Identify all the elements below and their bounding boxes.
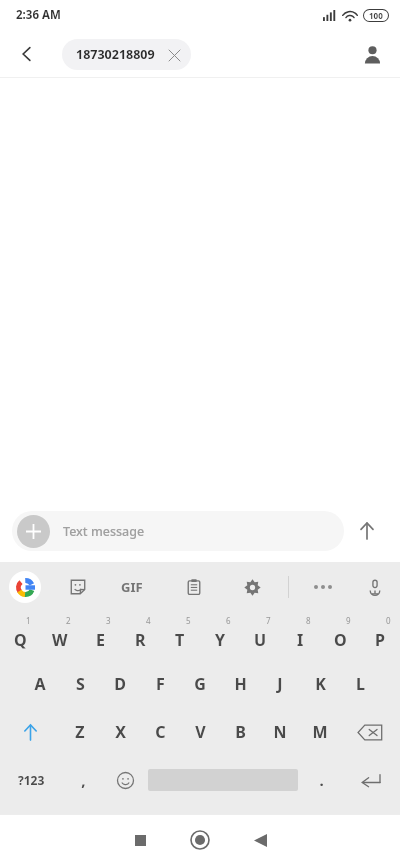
- button[interactable]: D: [100, 660, 140, 708]
- staticText: Z: [75, 721, 85, 743]
- button[interactable]: Shift: [0, 708, 60, 756]
- staticText: 3: [106, 615, 111, 626]
- staticText: ?123: [18, 772, 45, 788]
- button[interactable]: R: [120, 612, 160, 660]
- button[interactable]: Y: [200, 612, 240, 660]
- staticText: Q: [14, 629, 27, 651]
- staticText: 0: [386, 615, 391, 626]
- staticText: G: [194, 673, 206, 695]
- button[interactable]: Google: [9, 571, 41, 603]
- staticText: M: [312, 721, 328, 743]
- staticText: 6: [226, 615, 231, 626]
- button[interactable]: W: [40, 612, 80, 660]
- button[interactable]: Clipboard: [178, 571, 210, 603]
- button[interactable]: O: [320, 612, 360, 660]
- button[interactable]: C: [140, 708, 180, 756]
- button[interactable]: ,: [62, 756, 104, 804]
- staticText: F: [156, 673, 165, 695]
- button[interactable]: F: [140, 660, 180, 708]
- button[interactable]: Back: [10, 37, 44, 71]
- button[interactable]: M: [300, 708, 340, 756]
- staticText: J: [277, 673, 283, 695]
- staticText: B: [235, 721, 246, 743]
- button[interactable]: Home: [170, 814, 230, 866]
- button[interactable]: Add attachment: [17, 515, 50, 548]
- button[interactable]: Recent apps: [110, 814, 170, 866]
- staticText: P: [375, 629, 385, 651]
- staticText: 100: [369, 10, 383, 21]
- button[interactable]: L: [340, 660, 380, 708]
- button[interactable]: Q: [0, 612, 40, 660]
- button[interactable]: Emoji: [104, 756, 146, 804]
- button[interactable]: Send: [349, 513, 385, 549]
- button[interactable]: Contact details: [354, 36, 390, 72]
- button[interactable]: H: [220, 660, 260, 708]
- button[interactable]: Back: [230, 814, 290, 866]
- button[interactable]: A: [20, 660, 60, 708]
- staticText: Y: [215, 629, 226, 651]
- staticText: O: [334, 629, 347, 651]
- button[interactable]: X: [100, 708, 140, 756]
- button[interactable]: .: [300, 756, 342, 804]
- staticText: C: [155, 721, 166, 743]
- staticText: 7: [266, 615, 271, 626]
- staticText: 8: [306, 615, 311, 626]
- staticText: 4: [146, 615, 151, 626]
- staticText: N: [273, 721, 287, 743]
- button[interactable]: B: [220, 708, 260, 756]
- staticText: I: [297, 629, 304, 651]
- staticText: D: [114, 673, 126, 695]
- button[interactable]: Remove recipient: [165, 46, 183, 64]
- staticText: .: [319, 770, 324, 790]
- staticText: 5: [186, 615, 191, 626]
- button[interactable]: ?123: [0, 756, 62, 804]
- button[interactable]: Z: [60, 708, 100, 756]
- staticText: X: [115, 721, 126, 743]
- staticText: U: [254, 629, 267, 651]
- staticText: 1: [26, 615, 31, 626]
- staticText: K: [315, 673, 326, 695]
- button[interactable]: Voice input: [359, 571, 391, 603]
- button[interactable]: V: [180, 708, 220, 756]
- staticText: H: [234, 673, 247, 695]
- staticText: T: [175, 629, 185, 651]
- button[interactable]: S: [60, 660, 100, 708]
- staticText: S: [76, 673, 85, 695]
- staticText: 9: [346, 615, 351, 626]
- staticText: A: [34, 673, 46, 695]
- button[interactable]: T: [160, 612, 200, 660]
- button[interactable]: K: [300, 660, 340, 708]
- staticText: Text message: [63, 523, 145, 540]
- button[interactable]: G: [180, 660, 220, 708]
- button[interactable]: Stickers: [62, 571, 94, 603]
- staticText: 2: [66, 615, 71, 626]
- button[interactable]: Backspace: [340, 708, 400, 756]
- button[interactable]: J: [260, 660, 300, 708]
- staticText: E: [96, 629, 105, 651]
- staticText: V: [195, 721, 206, 743]
- staticText: 2:36 AM: [16, 7, 61, 23]
- button[interactable]: Settings: [236, 571, 268, 603]
- button[interactable]: N: [260, 708, 300, 756]
- button[interactable]: 18730218809: [62, 39, 191, 70]
- button[interactable]: Add attachment: [12, 511, 344, 551]
- staticText: GIF: [121, 578, 143, 596]
- button[interactable]: U: [240, 612, 280, 660]
- staticText: 18730218809: [76, 46, 155, 63]
- staticText: ,: [81, 770, 86, 790]
- staticText: R: [135, 629, 146, 651]
- button[interactable]: Enter: [342, 756, 400, 804]
- button[interactable]: GIF: [112, 567, 152, 607]
- staticText: L: [356, 673, 365, 695]
- button[interactable]: More options: [306, 570, 340, 604]
- staticText: W: [52, 629, 68, 651]
- button[interactable]: P: [360, 612, 400, 660]
- button[interactable]: E: [80, 612, 120, 660]
- button[interactable]: I: [280, 612, 320, 660]
